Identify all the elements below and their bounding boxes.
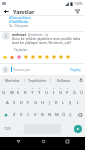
button[interactable]: M: [53, 109, 60, 121]
button[interactable]: Ü: [78, 85, 85, 97]
button[interactable]: J: [46, 97, 53, 109]
button[interactable]: B: [39, 109, 46, 121]
button[interactable]: N: [46, 109, 53, 121]
button[interactable]: X: [18, 109, 25, 121]
staticText: J: [49, 100, 51, 106]
staticText: 9: [60, 87, 62, 90]
button[interactable]: Ç: [67, 109, 74, 121]
staticText: ,: [18, 127, 19, 132]
staticText: C: [27, 112, 30, 118]
button[interactable]: mehmet: [0, 32, 85, 48]
button[interactable]: 4: [22, 85, 29, 97]
button[interactable]: Ş: [67, 97, 74, 109]
button[interactable]: V: [32, 109, 39, 121]
staticText: @mehmet · 2s: [28, 33, 49, 37]
staticText: A: [6, 100, 9, 106]
staticText: Q: [2, 90, 6, 96]
button[interactable]: Ö: [60, 109, 67, 121]
button[interactable]: Paylaş: [69, 66, 82, 73]
button[interactable]: G: [32, 97, 39, 109]
button[interactable]: A: [4, 97, 11, 109]
staticText: M: [55, 112, 59, 118]
button[interactable]: Emoji: [50, 53, 57, 60]
button[interactable]: H: [39, 97, 46, 109]
button[interactable]: L: [60, 97, 67, 109]
button[interactable]: C: [25, 109, 32, 121]
staticText: 5: [32, 87, 34, 90]
staticText: I: [77, 100, 79, 106]
staticText: W: [10, 90, 14, 96]
button[interactable]: Emoji: [29, 53, 36, 60]
staticText: G: [34, 100, 38, 106]
button[interactable]: ?123: [0, 122, 14, 136]
button[interactable]: Back: [2, 7, 11, 15]
button[interactable]: Shift: [0, 109, 11, 121]
button[interactable]: 0: [64, 85, 71, 97]
button[interactable]: Emoji: [22, 53, 29, 60]
staticText: 3s · Dünyanın: [9, 24, 29, 28]
staticText: R: [24, 90, 27, 96]
button[interactable]: Emoji: [1, 53, 8, 60]
button[interactable]: 1: [0, 85, 8, 97]
button[interactable]: Kullanıcı: [51, 75, 76, 85]
button[interactable]: Backspace: [74, 109, 85, 121]
staticText: 100%: [74, 1, 83, 6]
button[interactable]: Emoji: [8, 53, 15, 60]
staticText: L: [62, 100, 65, 106]
button[interactable]: Z: [11, 109, 18, 121]
button[interactable]: Recents: [61, 137, 73, 145]
button[interactable]: S: [11, 97, 18, 109]
staticText: ?123: [4, 127, 11, 131]
button[interactable]: ,: [14, 122, 23, 136]
button[interactable]: Emoji: [15, 53, 22, 60]
button[interactable]: 6: [36, 85, 43, 97]
staticText: .: [66, 127, 67, 132]
button[interactable]: F: [25, 97, 32, 109]
staticText: E: [17, 90, 20, 96]
staticText: 0: [67, 87, 69, 90]
button[interactable]: Back: [12, 137, 24, 145]
staticText: F: [27, 100, 30, 106]
button[interactable]: Voice input: [76, 75, 85, 85]
button[interactable]: 3: [15, 85, 22, 97]
staticText: I: [53, 90, 55, 96]
staticText: X: [20, 112, 23, 118]
button[interactable]: Home: [37, 137, 49, 145]
button[interactable]: Emoji: [64, 53, 71, 60]
button[interactable]: Emoji: [43, 53, 50, 60]
button[interactable]: Emoji: [36, 53, 43, 60]
staticText: Merhaba: [5, 78, 20, 83]
staticText: D: [20, 100, 24, 106]
button[interactable]: Merhaba: [0, 75, 24, 85]
staticText: 4: [25, 87, 27, 90]
button[interactable]: K: [53, 97, 60, 109]
staticText: V: [34, 112, 37, 118]
staticText: Paylaş: [70, 67, 81, 72]
staticText: Yanıtını yaz: [13, 68, 30, 72]
button[interactable]: D: [18, 97, 25, 109]
staticText: Y: [38, 90, 41, 96]
button[interactable]: 2: [8, 85, 15, 97]
staticText: O: [59, 90, 63, 96]
button[interactable]: Emoji: [57, 53, 64, 60]
button[interactable]: Ğ: [71, 85, 78, 97]
button[interactable]: Filter: [73, 7, 82, 15]
staticText: B: [41, 112, 44, 118]
staticText: 8: [53, 87, 55, 90]
staticText: P: [66, 90, 69, 96]
staticText: Ç: [69, 112, 72, 118]
staticText: Yanıtlar: [13, 8, 35, 15]
button[interactable]: I: [74, 97, 81, 109]
staticText: mehmet: [12, 32, 27, 37]
staticText: Teşekkürler: [28, 78, 47, 83]
button[interactable]: 9: [57, 85, 64, 97]
staticText: Ü: [80, 90, 84, 96]
button[interactable]: 8: [50, 85, 57, 97]
button[interactable]: 7: [43, 85, 50, 97]
button[interactable]: 5: [29, 85, 36, 97]
button[interactable]: Teşekkürler: [25, 75, 50, 85]
button[interactable]: Send: [74, 125, 82, 133]
staticText: S: [13, 100, 16, 106]
